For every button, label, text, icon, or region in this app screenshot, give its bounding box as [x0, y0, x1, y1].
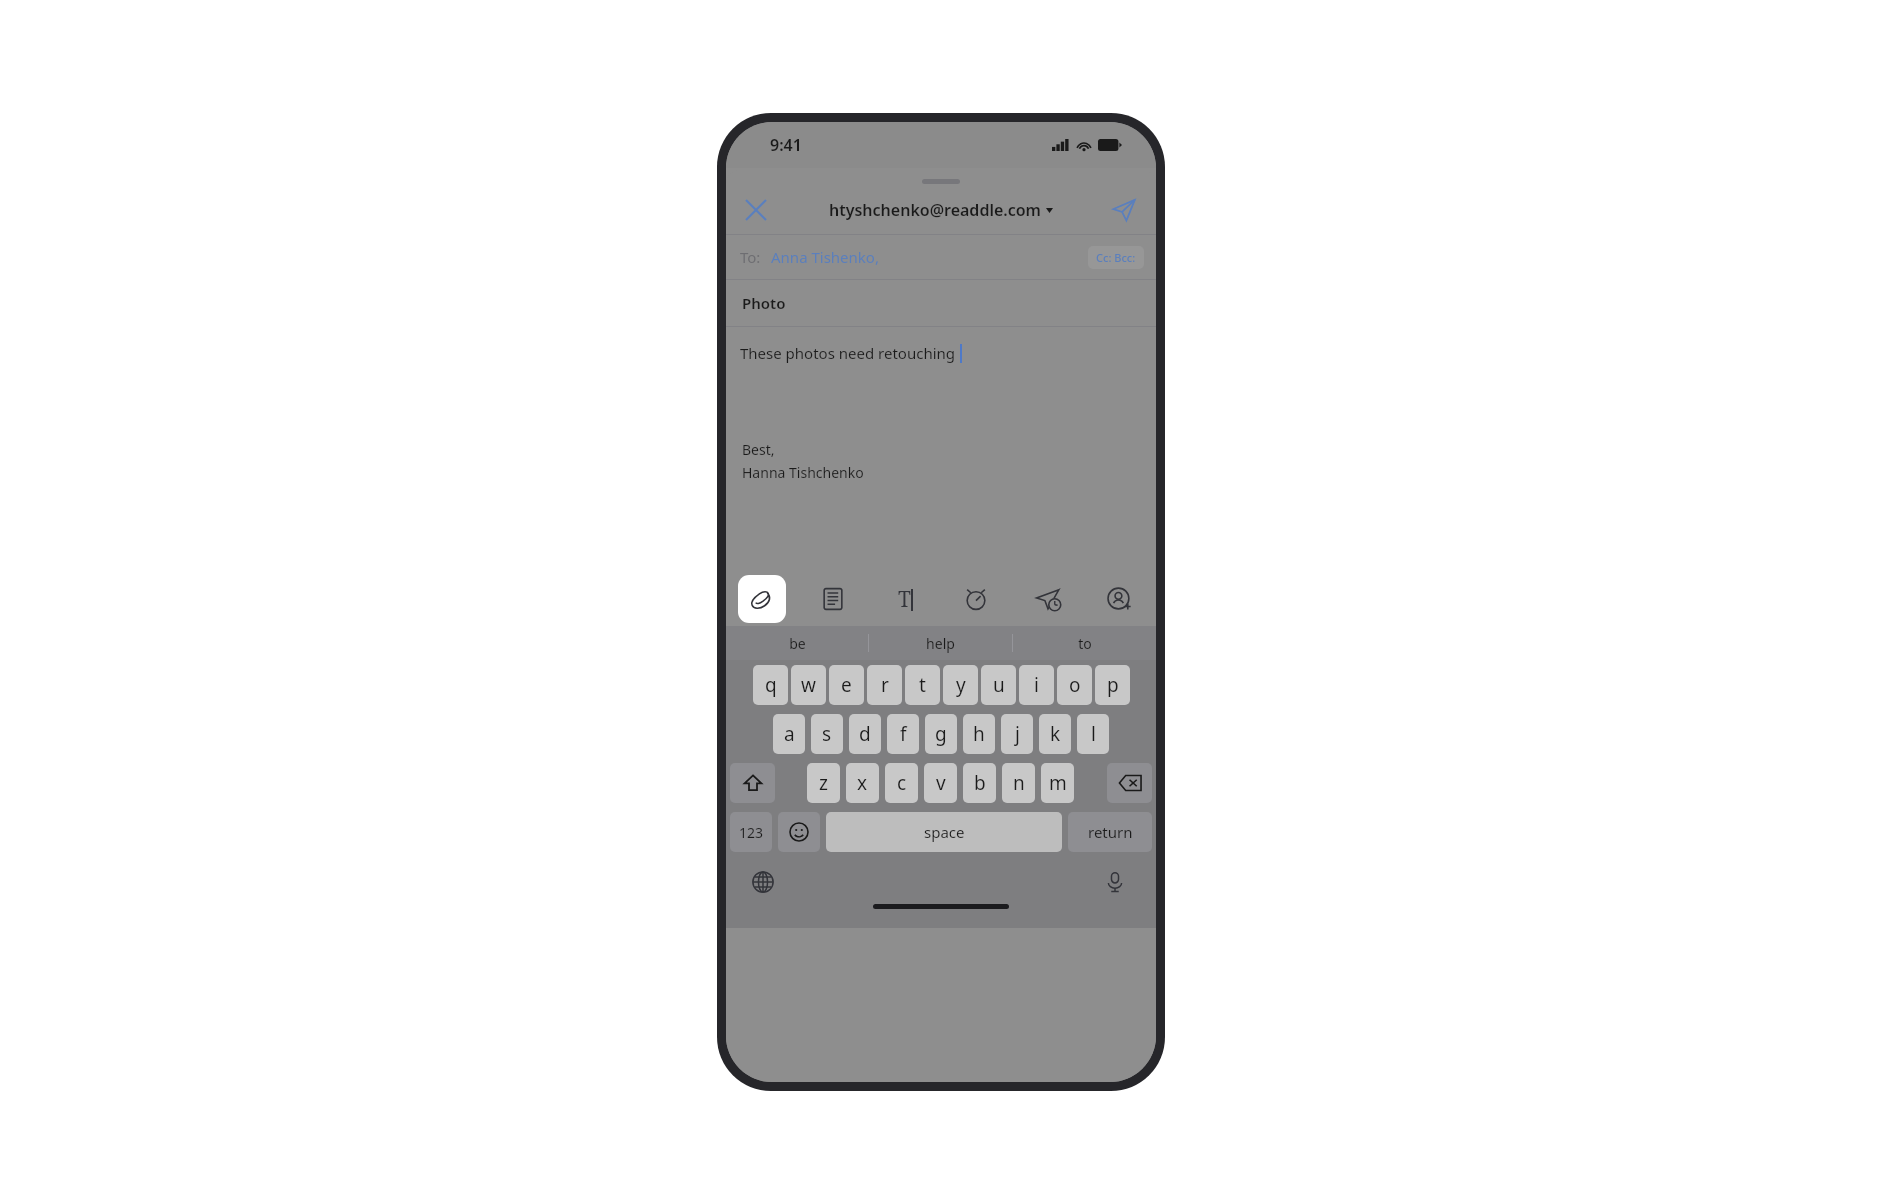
button[interactable]: to — [1013, 626, 1156, 660]
staticText: a — [784, 721, 795, 747]
staticText: t — [919, 672, 926, 698]
staticText: o — [1069, 672, 1081, 698]
button[interactable]: t — [905, 665, 940, 705]
button[interactable]: p — [1095, 665, 1130, 705]
button[interactable]: d — [849, 714, 881, 754]
staticText: These photos need retouching — [740, 343, 956, 363]
button[interactable]: z — [807, 763, 840, 803]
button[interactable]: c — [885, 763, 918, 803]
button[interactable]: help — [869, 626, 1012, 660]
button[interactable]: j — [1001, 714, 1033, 754]
staticText: j — [1015, 721, 1020, 747]
staticText: be — [789, 634, 806, 653]
button[interactable]: y — [943, 665, 978, 705]
staticText: v — [936, 770, 946, 796]
staticText: 9:41 — [770, 134, 802, 156]
button[interactable]: Remind — [952, 575, 1000, 623]
button[interactable]: u — [981, 665, 1016, 705]
staticText: c — [897, 770, 907, 796]
button[interactable]: a — [773, 714, 805, 754]
button[interactable]: Format text — [880, 575, 928, 623]
button[interactable]: r — [867, 665, 902, 705]
staticText: help — [926, 634, 955, 653]
button[interactable]: o — [1057, 665, 1092, 705]
button[interactable]: g — [925, 714, 957, 754]
staticText: p — [1107, 672, 1119, 698]
button[interactable]: Dictate — [1096, 863, 1134, 901]
button[interactable]: f — [887, 714, 919, 754]
button[interactable]: n — [1002, 763, 1035, 803]
staticText: i — [1034, 672, 1039, 698]
staticText: Cc: Bcc: — [1096, 250, 1136, 265]
staticText: b — [974, 770, 986, 796]
staticText: m — [1049, 770, 1067, 796]
button[interactable]: Send later — [1024, 575, 1072, 623]
staticText: l — [1091, 721, 1096, 747]
staticText: Best, — [742, 440, 775, 459]
staticText: Hanna Tishchenko — [742, 463, 864, 482]
staticText: n — [1013, 770, 1025, 796]
staticText: 123 — [739, 823, 764, 842]
button[interactable]: q — [753, 665, 788, 705]
staticText: To: — [740, 247, 761, 267]
button[interactable]: Cc: Bcc: — [1088, 246, 1144, 269]
button[interactable]: Send — [1102, 188, 1146, 232]
staticText: space — [924, 822, 965, 842]
staticText: z — [819, 770, 828, 796]
button[interactable]: Close — [734, 188, 778, 232]
staticText: to — [1078, 634, 1092, 653]
button[interactable]: Shift — [730, 763, 775, 803]
button[interactable]: Add contact — [1096, 575, 1144, 623]
staticText: Photo — [742, 293, 786, 313]
button[interactable]: v — [924, 763, 957, 803]
staticText: w — [801, 672, 816, 698]
button[interactable]: h — [963, 714, 995, 754]
staticText: k — [1050, 721, 1061, 747]
button[interactable]: w — [791, 665, 826, 705]
button[interactable]: be — [726, 626, 868, 660]
staticText: e — [841, 672, 852, 698]
button[interactable]: Backspace — [1107, 763, 1152, 803]
button[interactable]: htyshchenko@readdle.com — [829, 199, 1053, 221]
button[interactable]: s — [811, 714, 843, 754]
button[interactable]: Change keyboard — [744, 863, 782, 901]
staticText: f — [900, 721, 907, 747]
staticText: Anna Tishenko, — [771, 247, 879, 267]
button[interactable]: e — [829, 665, 864, 705]
staticText: y — [956, 672, 966, 698]
staticText: s — [822, 721, 832, 747]
button[interactable]: Emoji — [778, 812, 820, 852]
button[interactable]: l — [1077, 714, 1109, 754]
staticText: x — [857, 770, 868, 796]
staticText: h — [973, 721, 985, 747]
staticText: u — [993, 672, 1005, 698]
staticText: return — [1088, 822, 1133, 842]
button[interactable]: 123 — [730, 812, 772, 852]
button[interactable]: Photo — [726, 280, 1156, 326]
button[interactable]: Attach — [738, 575, 786, 623]
button[interactable]: To: — [726, 235, 1156, 279]
button[interactable]: m — [1041, 763, 1074, 803]
button[interactable]: b — [963, 763, 996, 803]
button[interactable]: i — [1019, 665, 1054, 705]
staticText: T — [898, 585, 911, 614]
button[interactable]: These photos need retouching — [726, 327, 1156, 572]
staticText: htyshchenko@readdle.com — [829, 199, 1041, 221]
staticText: r — [881, 672, 889, 698]
button[interactable]: return — [1068, 812, 1152, 852]
staticText: q — [765, 672, 777, 698]
button[interactable]: x — [846, 763, 879, 803]
button[interactable]: Template — [809, 575, 857, 623]
staticText: g — [935, 721, 947, 747]
button[interactable]: k — [1039, 714, 1071, 754]
staticText: d — [859, 721, 871, 747]
button[interactable]: space — [826, 812, 1062, 852]
